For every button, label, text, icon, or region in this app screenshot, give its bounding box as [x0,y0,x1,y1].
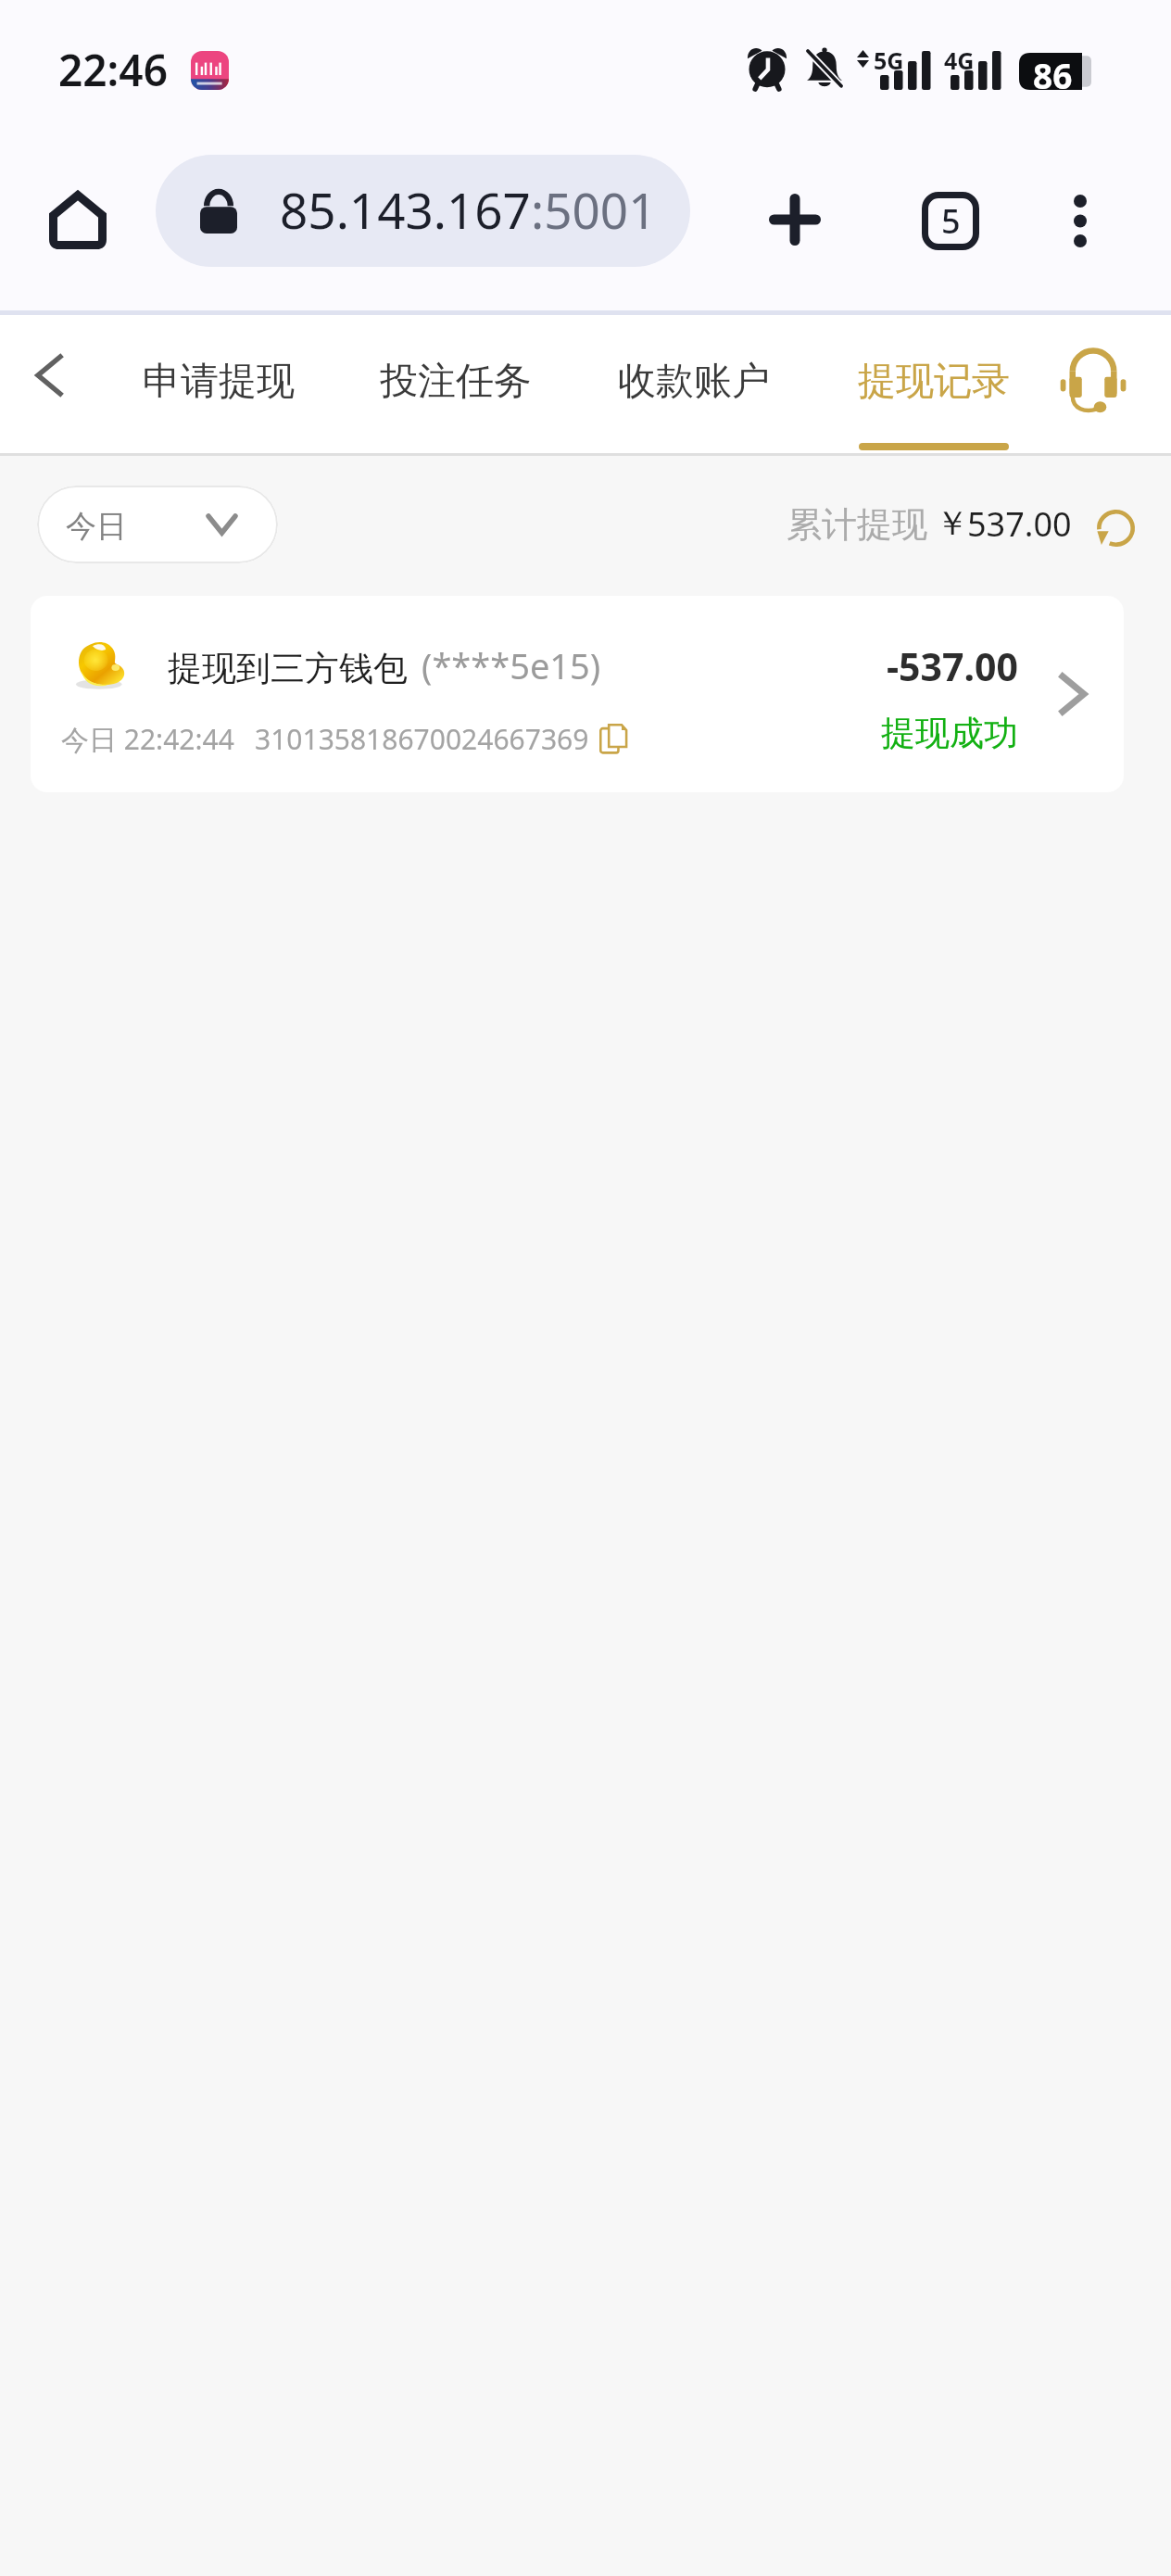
button[interactable]: New tab [747,171,843,268]
staticText: 537.00 [967,501,1072,547]
staticText: 22:46 [58,41,168,99]
staticText: -537.00 [887,640,1018,692]
button[interactable]: More options [1032,172,1128,269]
staticText: 提现记录 [858,358,1010,406]
staticText: 投注任务 [380,358,532,406]
button[interactable]: 提现记录 [837,315,1030,450]
staticText: :5001 [531,176,657,243]
button[interactable]: Back [3,329,95,422]
button[interactable]: 提现到三方钱包 [31,596,1124,792]
button[interactable] [1036,657,1110,731]
staticText: 今日 22:42:44 [61,720,234,758]
staticText: 85.143.167 [280,176,531,243]
button[interactable]: 今日 [37,486,278,563]
staticText: 5G [874,44,904,76]
staticText: 今日 [66,507,127,546]
button[interactable]: 投注任务 [359,315,552,450]
staticText: 累计提现 [787,502,927,547]
staticText: 提现成功 [881,712,1018,755]
button[interactable]: 85.143.167 [156,155,690,267]
staticText: (****5e15) [422,641,601,689]
button[interactable]: Refresh [1089,502,1141,554]
staticText: 提现到三方钱包 [168,647,408,690]
staticText: 收款账户 [618,358,770,406]
staticText: 86 [1033,52,1073,89]
staticText: 5 [941,198,961,244]
button[interactable]: Customer service [1055,345,1129,411]
button[interactable]: Home [30,171,126,268]
button[interactable]: 申请提现 [122,315,315,450]
staticText: 310135818670024667369 [255,720,589,758]
button[interactable]: Tabs [902,172,999,269]
staticText: ￥ [936,502,969,544]
button[interactable]: 收款账户 [598,315,790,450]
staticText: 申请提现 [143,358,295,406]
button[interactable]: Copy order number [589,717,637,760]
staticText: 4G [944,44,975,76]
